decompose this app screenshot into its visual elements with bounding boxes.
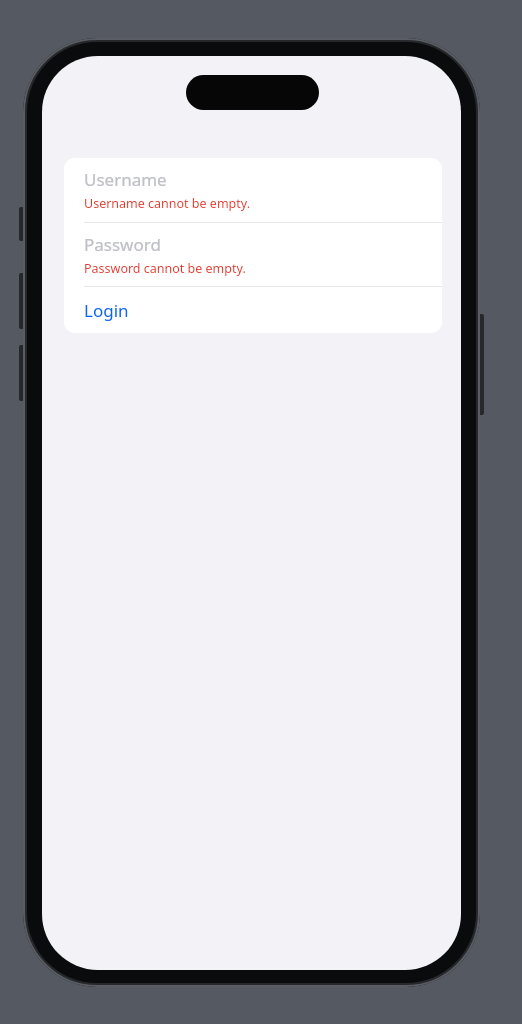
staticText: Username — [84, 168, 167, 191]
button[interactable]: Password — [64, 223, 442, 287]
staticText: Login — [84, 299, 129, 322]
staticText: Password cannot be empty. — [84, 260, 246, 277]
staticText: Password — [84, 233, 161, 256]
staticText: Username cannot be empty. — [84, 195, 251, 212]
button[interactable]: Login — [64, 287, 442, 333]
button[interactable]: Username — [64, 158, 442, 223]
